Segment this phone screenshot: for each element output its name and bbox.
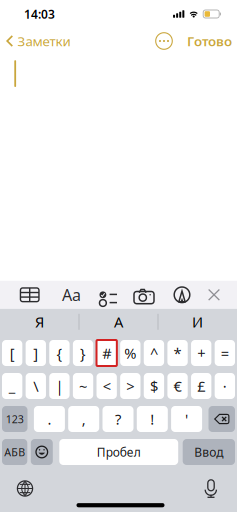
- button[interactable]: А: [79, 309, 158, 335]
- staticText: >: [126, 376, 134, 396]
- button[interactable]: И: [158, 309, 237, 335]
- staticText: |: [55, 376, 63, 396]
- button[interactable]: \: [26, 373, 46, 399]
- staticText: #: [102, 343, 111, 363]
- staticText: ·: [223, 376, 227, 396]
- staticText: =: [221, 343, 229, 363]
- staticText: +: [197, 343, 205, 363]
- staticText: $: [150, 376, 158, 396]
- button[interactable]: Markup: [168, 282, 196, 308]
- staticText: {: [56, 343, 62, 363]
- staticText: И: [192, 312, 203, 332]
- button[interactable]: ': [171, 406, 202, 432]
- button[interactable]: $: [144, 373, 164, 399]
- staticText: }: [80, 343, 86, 363]
- button[interactable]: Ввод: [183, 439, 235, 465]
- staticText: 123: [6, 412, 24, 426]
- button[interactable]: =: [215, 340, 235, 366]
- staticText: .: [47, 409, 51, 429]
- button[interactable]: More: [153, 30, 175, 52]
- button[interactable]: Aa: [57, 282, 85, 308]
- staticText: _: [9, 376, 16, 396]
- staticText: Заметки: [17, 32, 70, 50]
- staticText: [: [10, 343, 15, 363]
- staticText: ~: [79, 376, 87, 396]
- staticText: *: [174, 343, 182, 363]
- button[interactable]: ]: [26, 340, 46, 366]
- staticText: А: [114, 312, 123, 332]
- button[interactable]: #: [96, 340, 117, 366]
- button[interactable]: Пробел: [59, 439, 178, 465]
- button[interactable]: Next keyboard: [12, 476, 38, 500]
- button[interactable]: АБВ: [2, 439, 27, 465]
- staticText: ]: [33, 343, 38, 363]
- staticText: ?: [115, 409, 121, 429]
- staticText: АБВ: [4, 445, 25, 459]
- button[interactable]: +: [191, 340, 211, 366]
- staticText: €: [174, 376, 182, 396]
- staticText: <: [103, 376, 111, 396]
- button[interactable]: Checklist: [89, 282, 117, 308]
- button[interactable]: ^: [144, 340, 164, 366]
- staticText: £: [197, 376, 205, 396]
- button[interactable]: Close: [200, 282, 228, 308]
- button[interactable]: Я: [0, 309, 79, 335]
- staticText: Ввод: [194, 444, 223, 460]
- staticText: %: [124, 343, 136, 363]
- staticText: Готово: [187, 32, 232, 50]
- button[interactable]: ·: [215, 373, 235, 399]
- button[interactable]: <: [96, 373, 117, 399]
- button[interactable]: Emoji: [31, 439, 53, 465]
- staticText: !: [150, 409, 154, 429]
- button[interactable]: %: [120, 340, 140, 366]
- staticText: Aa: [62, 284, 81, 305]
- button[interactable]: |: [49, 373, 70, 399]
- staticText: ': [185, 409, 188, 429]
- button[interactable]: >: [120, 373, 140, 399]
- button[interactable]: ?: [102, 406, 133, 432]
- button[interactable]: Table: [16, 282, 44, 308]
- button[interactable]: {: [49, 340, 70, 366]
- button[interactable]: Заметки: [0, 29, 74, 53]
- button[interactable]: ~: [73, 373, 93, 399]
- staticText: ^: [150, 343, 158, 363]
- button[interactable]: Dictation: [198, 476, 224, 500]
- button[interactable]: !: [137, 406, 168, 432]
- button[interactable]: ,: [68, 406, 99, 432]
- staticText: Пробел: [97, 444, 141, 460]
- staticText: Я: [35, 312, 44, 332]
- button[interactable]: Готово: [175, 29, 237, 53]
- staticText: 14:03: [24, 6, 55, 22]
- button[interactable]: Delete: [208, 406, 235, 432]
- button[interactable]: £: [191, 373, 211, 399]
- button[interactable]: 123: [2, 406, 27, 432]
- button[interactable]: Camera: [130, 282, 158, 308]
- button[interactable]: €: [167, 373, 188, 399]
- staticText: \: [33, 376, 38, 396]
- button[interactable]: .: [34, 406, 65, 432]
- staticText: ,: [82, 409, 86, 429]
- button[interactable]: [: [2, 340, 22, 366]
- button[interactable]: _: [2, 373, 22, 399]
- button[interactable]: }: [73, 340, 93, 366]
- button[interactable]: *: [167, 340, 188, 366]
